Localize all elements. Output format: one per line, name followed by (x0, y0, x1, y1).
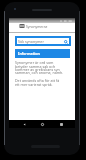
button[interactable]: Information (15, 49, 70, 58)
button[interactable]: Home (38, 120, 46, 128)
staticText: Det används ofta för att få ett mer vari… (15, 78, 64, 87)
button[interactable]: Synonymer.se (9, 23, 75, 32)
other: Search (64, 40, 68, 44)
button[interactable]: Sök synonymer (15, 36, 71, 46)
staticText: Synonymer.se (26, 24, 48, 28)
staticText: Sök synonymer (18, 39, 44, 44)
staticText: Information (18, 51, 40, 56)
button[interactable]: Recent apps (57, 120, 65, 128)
staticText: Synonymer är ord som betyder samma sak o… (15, 60, 64, 75)
other: Synonymer.se (20, 24, 24, 28)
button[interactable]: Back (20, 120, 28, 128)
